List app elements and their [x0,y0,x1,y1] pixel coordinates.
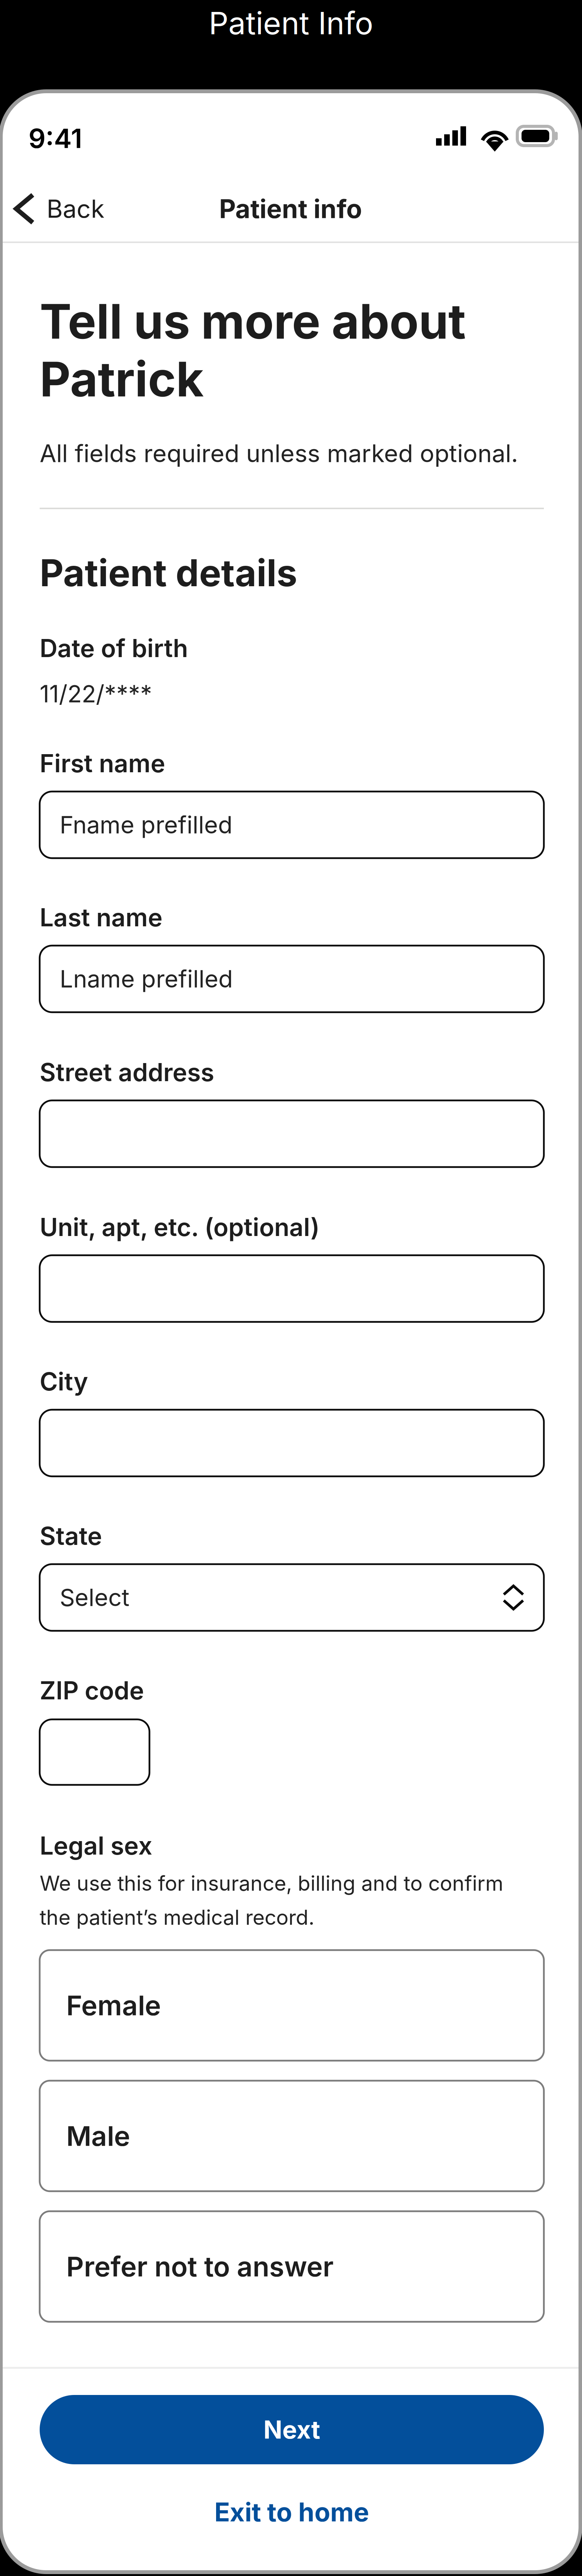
button[interactable]: Prefer not to answer [40,2211,544,2322]
button[interactable]: Back [1,183,155,235]
staticText: Female [66,1989,161,2022]
staticText: City [40,1367,88,1396]
button[interactable]: Female [40,1950,544,2061]
button[interactable]: Select [40,1564,544,1631]
staticText: Prefer not to answer [66,2250,334,2283]
staticText: Male [66,2119,130,2152]
staticText: Unit, apt, etc. (optional) [40,1212,320,1242]
staticText: Patient info [219,193,362,224]
staticText: State [40,1521,102,1551]
staticText: Tell us more about Patrick [40,292,466,408]
staticText: Street address [40,1057,214,1087]
staticText: Exit to home [214,2497,369,2528]
staticText: Lname prefilled [60,965,233,993]
staticText: First name [40,748,165,778]
staticText: Last name [40,902,163,932]
button[interactable]: Male [40,2081,544,2191]
staticText: Select [60,1583,129,1612]
staticText: Date of birth [40,633,188,663]
staticText: 9:41 [29,122,82,154]
staticText: Patient details [40,550,297,595]
staticText: All fields required unless marked option… [40,439,518,468]
staticText: We use this for insurance, billing and t… [40,1871,503,1930]
staticText: Legal sex [40,1831,152,1861]
button[interactable]: Exit to home [40,2495,544,2529]
staticText: Patient Info [209,4,373,42]
staticText: Back [47,194,104,224]
staticText: 11/22/**** [40,679,152,708]
staticText: Fname prefilled [60,811,233,839]
staticText: Next [263,2415,320,2445]
button[interactable]: Next [40,2395,544,2464]
staticText: ZIP code [40,1675,144,1705]
